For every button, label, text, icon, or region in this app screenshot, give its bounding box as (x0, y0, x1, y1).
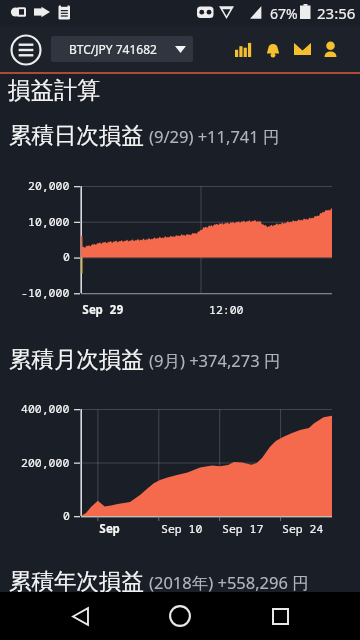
staticText: 0 (63, 508, 70, 524)
staticText: 200,000 (21, 455, 70, 471)
button[interactable]: Account (315, 34, 345, 64)
staticText: 10,000 (28, 214, 70, 230)
staticText: 損益計算 (8, 76, 100, 105)
button[interactable]: Mail (287, 34, 317, 64)
staticText: Sep 17 (222, 521, 264, 537)
staticText: Sep 29 (82, 302, 124, 318)
button[interactable]: Chart (228, 34, 258, 64)
staticText: Sep 10 (161, 521, 203, 537)
button[interactable]: Home (156, 592, 204, 640)
staticText: -10,000 (21, 285, 70, 301)
staticText: (9月) +374,273 円 (149, 349, 281, 372)
staticText: BTC/JPY 741682 (69, 41, 157, 57)
button[interactable]: Back (56, 592, 104, 640)
button[interactable]: Recents (256, 592, 304, 640)
button[interactable]: Notifications (258, 34, 288, 64)
staticText: 累積年次損益 (9, 567, 144, 595)
staticText: 400,000 (21, 401, 70, 417)
staticText: (9/29) +11,741 円 (149, 125, 280, 148)
staticText: 0 (63, 249, 70, 265)
staticText: 累積月次損益 (9, 345, 144, 373)
staticText: 23:56 (317, 3, 356, 23)
staticText: Sep (99, 521, 120, 537)
button[interactable]: Menu (10, 34, 42, 66)
staticText: 67% (270, 4, 298, 23)
staticText: 12:00 (209, 302, 244, 318)
staticText: 累積日次損益 (9, 121, 144, 149)
button[interactable]: BTC/JPY 741682 (51, 36, 193, 62)
staticText: 20,000 (28, 178, 70, 194)
staticText: (2018年) +558,296 円 (149, 571, 309, 594)
staticText: Sep 24 (282, 521, 324, 537)
